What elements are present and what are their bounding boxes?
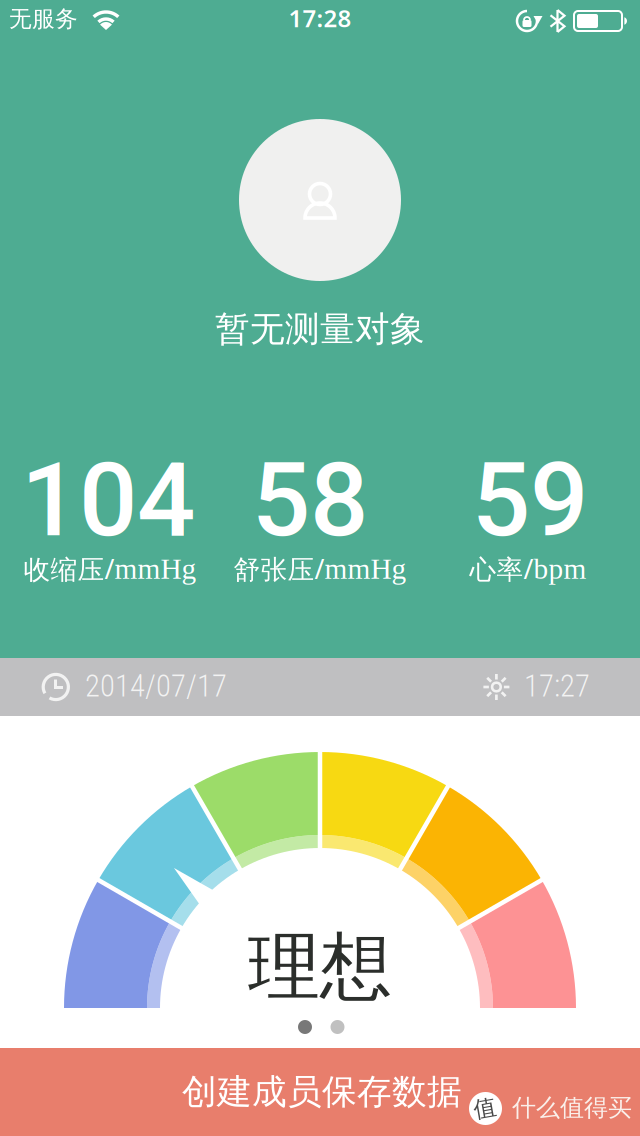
staticText: 收缩压/ <box>23 551 114 586</box>
staticText: 暂无测量对象 <box>215 308 425 351</box>
staticText: mmHg <box>324 552 406 585</box>
staticText: 舒张压/ <box>233 551 324 586</box>
staticText: 无服务 <box>9 5 78 33</box>
staticText: 心率/ <box>469 551 533 586</box>
staticText: 创建成员保存数据 <box>182 1071 462 1113</box>
staticText: 2014/07/17 <box>85 668 227 704</box>
button[interactable]: 暂无测量对象 <box>0 0 640 420</box>
staticText: 104 <box>21 440 195 560</box>
staticText: 值 <box>473 1094 496 1122</box>
button[interactable]: 创建成员保存数据 <box>0 1048 640 1136</box>
staticText: 58 <box>252 440 368 560</box>
staticText: bpm <box>533 552 586 585</box>
staticText: 理想 <box>248 923 392 1011</box>
staticText: mmHg <box>114 552 196 585</box>
staticText: 什么值得买 <box>512 1093 632 1122</box>
staticText: 17:28 <box>288 2 351 34</box>
staticText: 17:27 <box>524 668 590 704</box>
staticText: 59 <box>472 440 588 560</box>
